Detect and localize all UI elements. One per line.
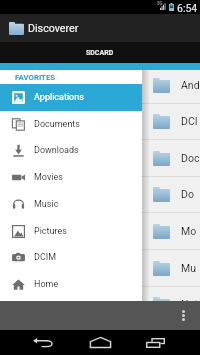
staticText: Download — [181, 188, 200, 200]
staticText: Documents — [181, 152, 200, 164]
button[interactable]: Notifications — [0, 286, 200, 322]
button[interactable]: Home — [80, 330, 120, 355]
staticText: Pictures — [34, 226, 67, 237]
button[interactable]: Documents — [0, 111, 142, 138]
button[interactable]: Download — [0, 176, 200, 212]
button[interactable]: Discoverer — [0, 14, 200, 42]
staticText: Home — [34, 279, 59, 290]
button[interactable]: Downloads — [0, 137, 142, 164]
button[interactable]: Movies — [0, 213, 200, 249]
button[interactable]: Music — [0, 191, 142, 218]
staticText: Movies — [34, 172, 63, 183]
staticText: Applications — [34, 92, 84, 103]
button[interactable]: Documents — [0, 140, 200, 176]
button[interactable]: Applications — [0, 84, 142, 111]
staticText: DCIM — [34, 252, 57, 263]
button[interactable]: Music — [0, 250, 200, 286]
button[interactable]: DCIM — [0, 103, 200, 139]
staticText: Music — [34, 199, 59, 210]
staticText: SDCARD — [86, 49, 114, 57]
button[interactable]: Movies — [0, 164, 142, 191]
button[interactable]: Android — [0, 67, 200, 103]
staticText: Movies — [181, 225, 200, 237]
staticText: FAVORITES — [15, 73, 56, 82]
staticText: 3G — [157, 1, 163, 6]
button[interactable]: Pictures — [0, 218, 142, 245]
staticText: Music — [181, 262, 200, 274]
staticText: DCIM — [181, 115, 200, 127]
staticText: Notifications — [181, 298, 200, 310]
button[interactable]: Recent apps — [135, 330, 175, 355]
button[interactable]: More options — [175, 301, 192, 330]
button[interactable]: SDCARD — [0, 42, 200, 64]
button[interactable]: DCIM — [0, 244, 142, 271]
staticText: Discoverer — [28, 22, 79, 35]
staticText: Android — [181, 79, 200, 91]
button[interactable]: Home — [0, 271, 142, 298]
staticText: Documents — [34, 119, 80, 130]
staticText: 6:54 — [177, 2, 198, 14]
button[interactable]: Back — [23, 330, 63, 355]
staticText: Downloads — [34, 145, 79, 156]
